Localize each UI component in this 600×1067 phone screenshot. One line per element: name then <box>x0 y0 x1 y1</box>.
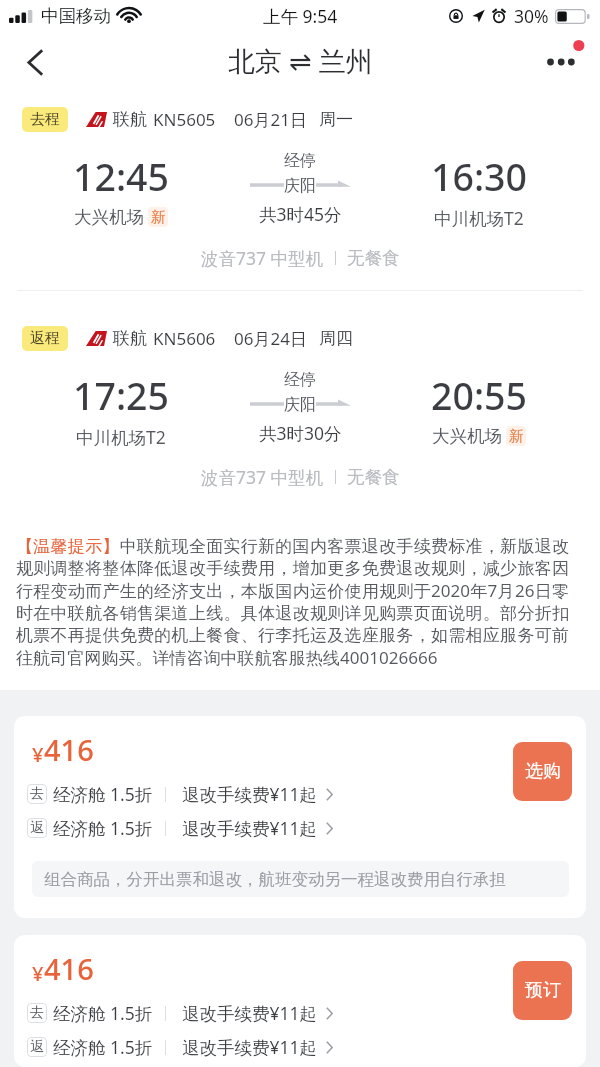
staticText: 组合商品，分开出票和退改，航班变动另一程退改费用自行承担 <box>44 869 506 890</box>
staticText: 去 <box>30 785 44 803</box>
staticText: 庆阳 <box>284 395 316 415</box>
staticText: 06月21日 <box>234 108 307 131</box>
staticText: 经济舱 1.5折 <box>53 1035 153 1059</box>
button[interactable]: More options <box>536 32 600 92</box>
staticText: 去程 <box>30 110 60 129</box>
staticText: 退改手续费¥11起 <box>182 782 318 806</box>
button[interactable]: 预订 <box>513 961 572 1020</box>
button[interactable]: 返 <box>27 1035 333 1059</box>
staticText: 中川机场T2 <box>434 206 524 230</box>
staticText: 17:25 <box>73 370 169 421</box>
staticText: 波音737 中型机 <box>201 246 324 270</box>
staticText: 庆阳 <box>284 176 316 196</box>
button[interactable]: 去程 <box>0 92 600 290</box>
staticText: 经停 <box>284 370 316 390</box>
staticText: ¥ <box>32 960 44 987</box>
staticText: 【温馨提示】 中联航现全面实行新的国内客票退改手续费标准，新版退改规则调整将整体… <box>16 535 569 670</box>
button[interactable]: 去 <box>27 782 333 806</box>
staticText: 共3时45分 <box>259 202 342 226</box>
staticText: 新 <box>509 427 524 446</box>
staticText: 周四 <box>319 328 353 349</box>
staticText: 中国移动 <box>41 5 111 27</box>
staticText: 退改手续费¥11起 <box>182 1035 318 1059</box>
staticText: 经济舱 1.5折 <box>53 816 153 840</box>
staticText: 预订 <box>525 979 561 1002</box>
button[interactable]: 返 <box>27 816 333 840</box>
button[interactable]: ¥ <box>14 935 586 1067</box>
staticText: 30% <box>514 4 549 28</box>
staticText: 416 <box>44 730 94 769</box>
staticText: 16:30 <box>431 151 527 202</box>
staticText: 返程 <box>30 329 60 348</box>
staticText: ¥ <box>32 741 44 768</box>
staticText: 上午 9:54 <box>263 4 338 28</box>
staticText: KN5606 <box>153 327 216 350</box>
staticText: 北京 ⇌ 兰州 <box>228 42 373 79</box>
staticText: 416 <box>44 949 94 988</box>
staticText: 无餐食 <box>347 247 400 269</box>
staticText: 经济舱 1.5折 <box>53 782 153 806</box>
staticText: 去 <box>30 1004 44 1022</box>
staticText: 退改手续费¥11起 <box>182 816 318 840</box>
staticText: 联航 <box>113 109 147 130</box>
staticText: 06月24日 <box>234 327 307 350</box>
staticText: 无餐食 <box>347 466 400 488</box>
staticText: 波音737 中型机 <box>201 465 324 489</box>
staticText: 大兴机场 <box>432 425 502 447</box>
staticText: 周一 <box>319 109 353 130</box>
staticText: 退改手续费¥11起 <box>182 1001 318 1025</box>
staticText: 经停 <box>284 151 316 171</box>
staticText: 新 <box>151 208 166 227</box>
staticText: 选购 <box>525 760 561 783</box>
staticText: 共3时30分 <box>259 421 342 445</box>
button[interactable]: Back <box>0 32 70 92</box>
button[interactable]: 返程 <box>0 311 600 509</box>
staticText: 中川机场T2 <box>76 425 166 449</box>
staticText: 返 <box>30 1038 44 1056</box>
staticText: 返 <box>30 819 44 837</box>
button[interactable]: 选购 <box>513 742 572 801</box>
button[interactable]: ¥ <box>14 716 586 918</box>
staticText: 20:55 <box>431 370 527 421</box>
staticText: 大兴机场 <box>74 206 144 228</box>
staticText: 12:45 <box>73 151 169 202</box>
staticText: KN5605 <box>153 108 216 131</box>
staticText: 联航 <box>113 328 147 349</box>
staticText: 经济舱 1.5折 <box>53 1001 153 1025</box>
button[interactable]: 去 <box>27 1001 333 1025</box>
